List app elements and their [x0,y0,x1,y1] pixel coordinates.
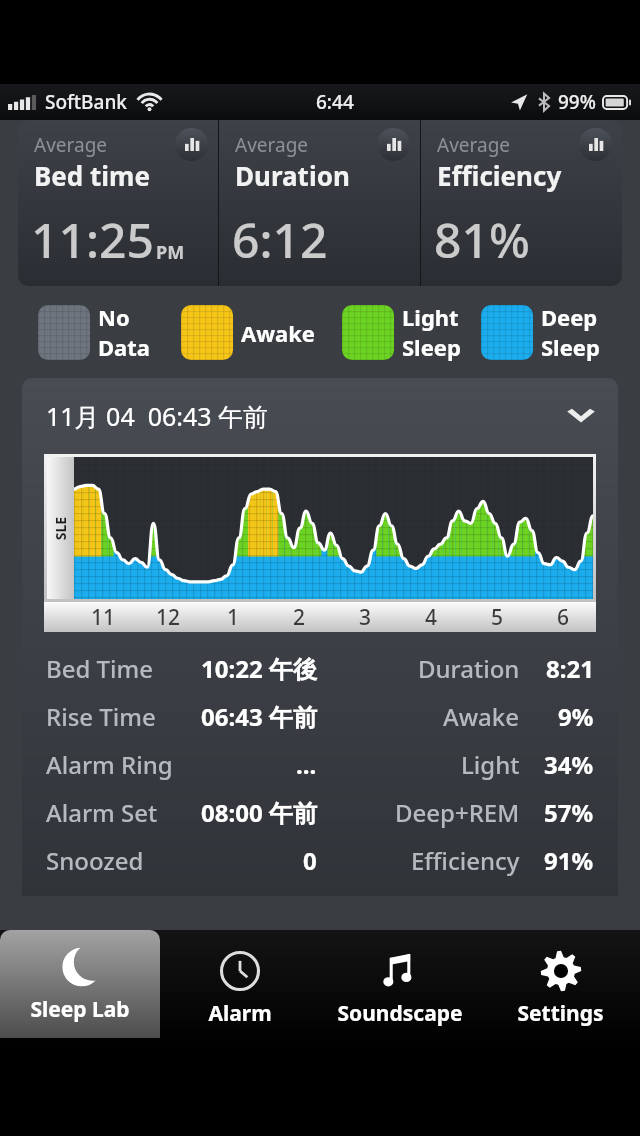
other: Collapse [566,408,596,425]
staticText: Average [437,132,511,158]
staticText: Deep+REM [395,796,520,829]
staticText: Duration [418,652,520,685]
staticText: 12 [156,603,181,632]
staticText: 06:43 午前 [201,700,317,733]
staticText: 1 [227,603,240,632]
staticText: Data [98,332,151,362]
button[interactable]: Soundscape [320,930,480,1046]
staticText: Snoozed [46,844,144,877]
staticText: 8:21 [546,652,594,685]
staticText: No [98,302,130,332]
staticText: 6:12 [232,207,328,272]
button[interactable]: Show Duration chart [377,128,410,161]
staticText: Bed time [34,158,150,193]
staticText: 5 [491,603,504,632]
staticText: Alarm Set [46,796,158,829]
staticText: 11月 04 06:43 午前 [46,399,269,433]
staticText: Sleep Lab [30,995,130,1024]
staticText: 11 [91,603,116,632]
staticText: Duration [235,158,350,193]
staticText: Alarm [208,999,272,1028]
staticText: Bed Time [46,652,154,685]
staticText: 34% [544,748,594,781]
staticText: 4 [425,603,438,632]
staticText: 91% [544,844,594,877]
staticText: Rise Time [46,700,156,733]
button[interactable]: Sleep Lab [0,930,160,1038]
button[interactable]: Average [421,120,622,286]
staticText: 6 [557,603,570,632]
button[interactable]: Alarm [160,930,320,1046]
button[interactable]: Average [18,120,218,286]
staticText: 99% [558,89,596,115]
staticText: Efficiency [437,158,562,193]
staticText: 11:25 [31,207,154,272]
staticText: 0 [303,844,317,877]
staticText: Settings [517,999,604,1028]
staticText: Deep [541,302,598,332]
staticText: SoftBank [45,89,127,115]
button[interactable]: Settings [480,930,640,1046]
button[interactable]: Show Bed time chart [175,128,208,161]
staticText: 81% [434,207,530,272]
staticText: Sleep [402,332,461,362]
staticText: Awake [443,700,520,733]
staticText: Awake [241,318,316,348]
staticText: Alarm Ring [46,748,173,781]
staticText: Light [461,748,520,781]
staticText: SLEEP DEPTH [51,515,70,542]
staticText: PM [156,240,185,265]
staticText: Efficiency [411,844,520,877]
staticText: Sleep [541,332,600,362]
button[interactable]: Average [219,120,420,286]
staticText: Average [34,132,108,158]
staticText: 2 [293,603,306,632]
button[interactable]: 11月 04 06:43 午前 [22,378,618,454]
staticText: 3 [359,603,372,632]
staticText: Average [235,132,309,158]
staticText: 57% [544,796,594,829]
staticText: 08:00 午前 [201,796,317,829]
staticText: ... [296,748,317,781]
button[interactable]: Show Efficiency chart [579,128,612,161]
staticText: Soundscape [337,999,463,1028]
staticText: Light [402,302,459,332]
staticText: 10:22 午後 [201,652,317,685]
staticText: 9% [558,700,594,733]
staticText: 6:44 [316,89,354,115]
